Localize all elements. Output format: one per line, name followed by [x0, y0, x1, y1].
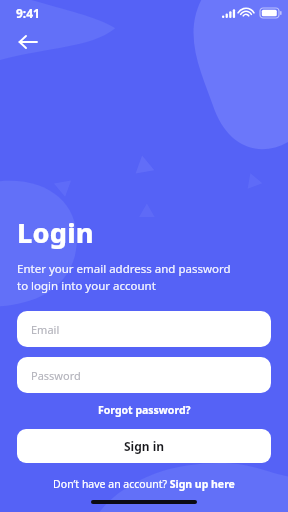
staticText: 9:41 [16, 5, 40, 21]
button[interactable]: Back [12, 26, 44, 58]
staticText: Sign in [124, 438, 165, 454]
button[interactable]: Email [17, 311, 271, 347]
staticText: Password [31, 368, 81, 383]
staticText: Forgot password? [98, 403, 191, 417]
staticText: Login [17, 214, 94, 251]
button[interactable]: Don’t have an account? Sign up here [17, 477, 271, 491]
staticText: Email [31, 322, 60, 337]
button[interactable]: Sign in [17, 429, 271, 463]
staticText: Don’t have an account? Sign up here [53, 477, 235, 491]
button[interactable]: Password [17, 357, 271, 393]
staticText: Enter your email address and password to… [17, 261, 231, 293]
button[interactable]: Forgot password? [17, 403, 271, 417]
